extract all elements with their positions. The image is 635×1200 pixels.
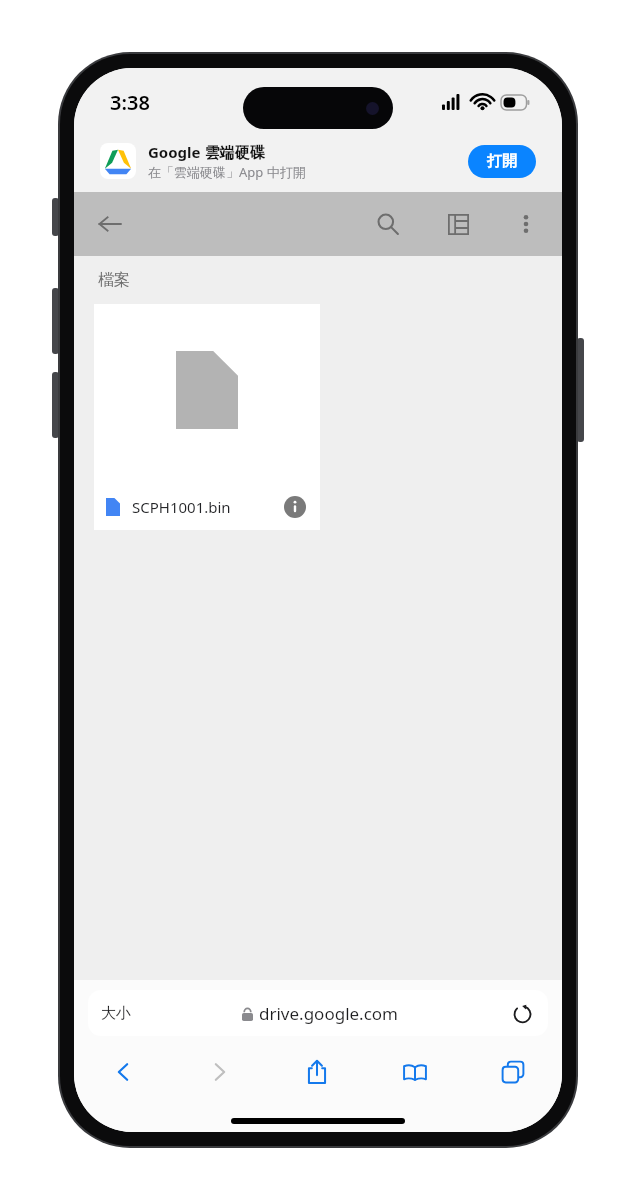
- button[interactable]: 大小: [88, 990, 548, 1036]
- staticText: Google 雲端硬碟: [148, 142, 265, 162]
- button[interactable]: Google Drive app icon: [100, 143, 136, 179]
- staticText: 檔案: [98, 270, 130, 290]
- button[interactable]: Search: [364, 200, 412, 248]
- button[interactable]: Reload: [496, 990, 548, 1036]
- button[interactable]: 打開: [468, 145, 536, 178]
- staticText: SCPH1001.bin: [132, 497, 282, 517]
- button[interactable]: More options: [504, 202, 548, 246]
- button[interactable]: 大小: [88, 990, 144, 1036]
- button[interactable]: Bookmarks: [366, 1048, 464, 1096]
- staticText: drive.google.com: [259, 1002, 398, 1025]
- button[interactable]: Share: [268, 1048, 366, 1096]
- button[interactable]: Forward: [171, 1048, 268, 1096]
- staticText: 3:38: [110, 89, 150, 116]
- staticText: 打開: [487, 152, 517, 171]
- staticText: 大小: [101, 1004, 131, 1023]
- button[interactable]: SCPH1001.bin: [94, 304, 320, 530]
- button[interactable]: Tabs: [464, 1048, 562, 1096]
- button[interactable]: Back: [74, 1048, 171, 1096]
- button[interactable]: File info: [282, 494, 308, 520]
- staticText: 在「雲端硬碟」App 中打開: [148, 163, 306, 181]
- button[interactable]: Back: [86, 200, 134, 248]
- button[interactable]: List view: [434, 200, 482, 248]
